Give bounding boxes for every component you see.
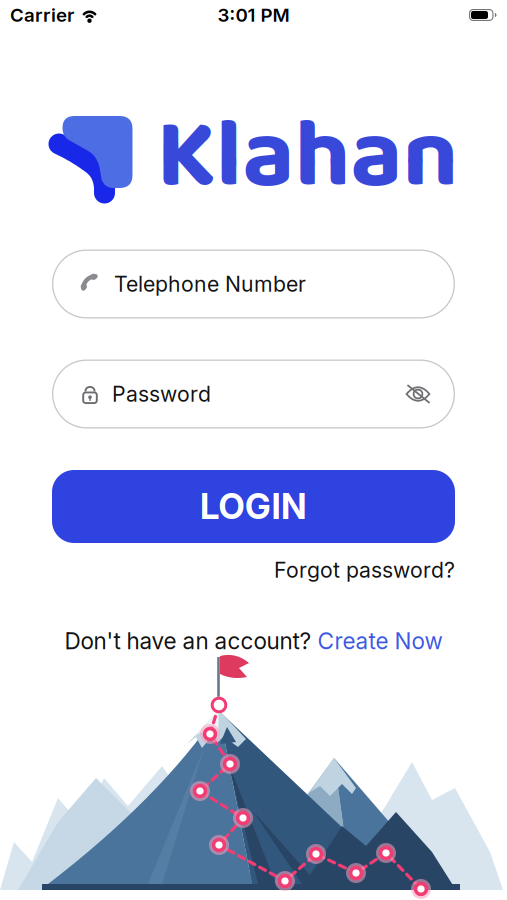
staticText: 3:01 PM <box>217 4 289 26</box>
button[interactable]: Password <box>52 359 455 428</box>
staticText: Carrier <box>10 4 74 26</box>
button[interactable]: Forgot password? <box>52 557 455 583</box>
staticText: Create Now <box>317 628 442 654</box>
staticText: Klahan <box>156 79 458 235</box>
button[interactable]: LOGIN <box>52 470 455 543</box>
staticText: Don't have an account? <box>64 628 311 654</box>
staticText: Telephone Number <box>114 271 306 297</box>
staticText: Password <box>112 381 211 407</box>
button[interactable]: Create Now <box>317 628 442 654</box>
staticText: Forgot password? <box>274 557 455 583</box>
staticText: LOGIN <box>200 486 307 527</box>
button[interactable]: Telephone Number <box>52 249 455 318</box>
button[interactable]: Show password <box>405 385 431 403</box>
